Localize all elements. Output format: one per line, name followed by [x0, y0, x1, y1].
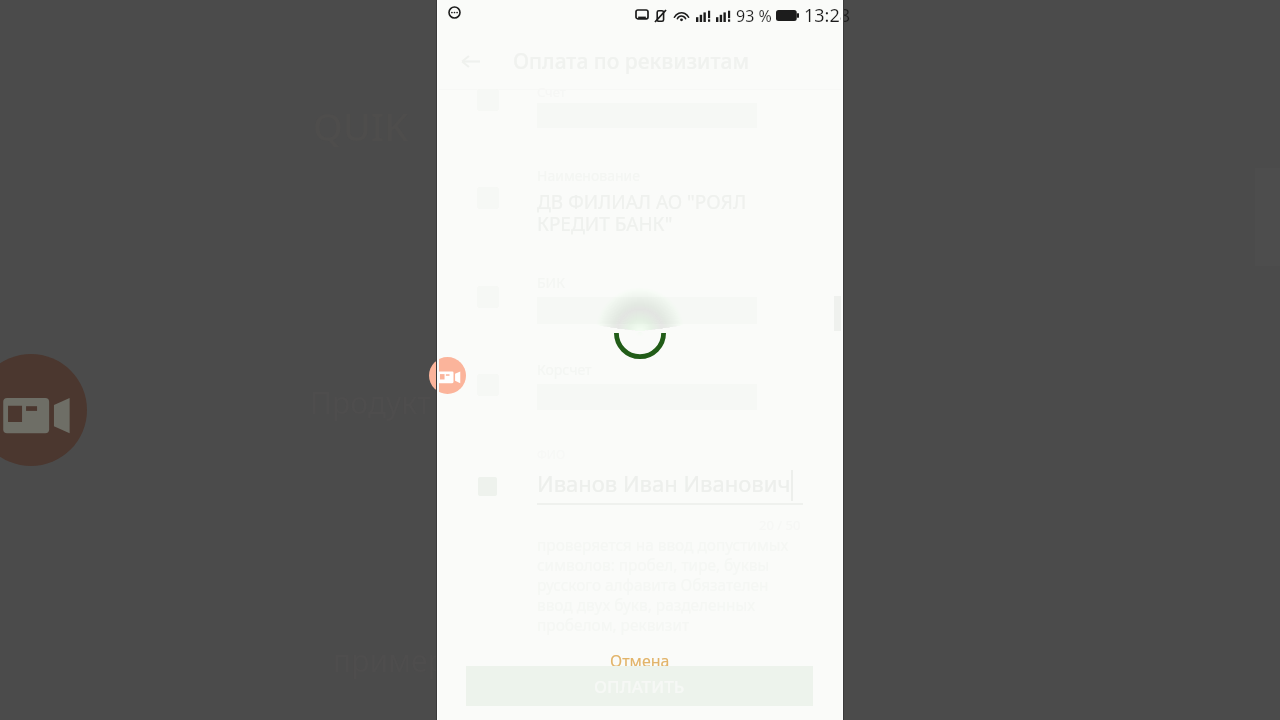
staticText: пример: [333, 640, 446, 681]
staticText: 13:28: [804, 3, 851, 28]
button[interactable]: ФИО: [457, 442, 817, 532]
button[interactable]: Video call: [0, 354, 87, 466]
staticText: 93 %: [736, 5, 772, 27]
button[interactable]: БИК: [457, 269, 817, 327]
staticText: ДВ ФИЛИАЛ АО "РОЯЛ КРЕДИТ БАНК": [537, 189, 747, 237]
button[interactable]: Video call: [429, 357, 466, 394]
button[interactable]: Корсчет: [457, 356, 817, 414]
staticText: Продукт: [310, 382, 432, 423]
staticText: Оплата по реквизитам: [513, 47, 749, 76]
button[interactable]: Отмена: [610, 650, 670, 672]
staticText: ОПЛАТИТЬ: [594, 675, 685, 698]
other: Back: [461, 52, 480, 71]
staticText: Иванов Иван Иванович: [537, 468, 791, 498]
